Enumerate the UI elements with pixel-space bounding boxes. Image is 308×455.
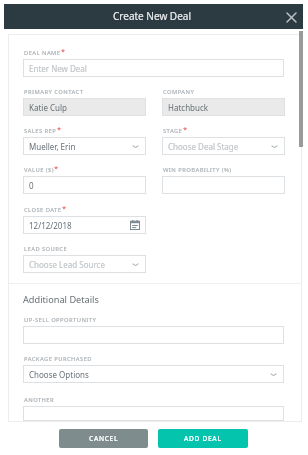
staticText: Choose Lead Source <box>29 259 105 270</box>
staticText: ANOTHER <box>24 396 55 404</box>
staticText: * <box>57 124 62 134</box>
button[interactable]: Close dialog <box>283 9 299 25</box>
button[interactable]: Katie Culp <box>23 98 146 116</box>
staticText: Katie Culp <box>29 102 67 113</box>
button[interactable]: Choose Lead Source <box>23 255 146 273</box>
staticText: STAGE <box>163 127 183 135</box>
button[interactable] <box>23 406 284 421</box>
staticText: COMPANY <box>163 88 195 96</box>
button[interactable]: Choose Deal Stage <box>162 137 285 155</box>
staticText: SALES REP <box>24 127 57 135</box>
staticText: PRIMARY CONTACT <box>24 88 84 96</box>
staticText: * <box>61 46 66 56</box>
staticText: CANCEL <box>89 434 119 443</box>
button[interactable]: CANCEL <box>59 429 148 448</box>
button[interactable]: Enter New Deal <box>23 59 284 77</box>
staticText: LEAD SOURCE <box>24 245 68 253</box>
staticText: * <box>183 124 188 134</box>
button[interactable]: 0 <box>23 176 146 194</box>
staticText: Choose Options <box>29 369 89 380</box>
staticText: Additional Details <box>23 293 99 306</box>
staticText: PACKAGE PURCHASED <box>24 355 92 363</box>
button[interactable] <box>23 326 284 344</box>
staticText: Mueller, Erin <box>29 141 76 152</box>
button[interactable]: Create New Deal <box>4 4 303 29</box>
staticText: * <box>62 203 67 213</box>
button[interactable]: 12/12/2018 <box>23 216 146 234</box>
staticText: VALUE ($) <box>24 166 54 174</box>
staticText: UP-SELL OPPORTUNITY <box>24 316 97 324</box>
staticText: Create New Deal <box>113 9 191 23</box>
button[interactable]: ADD DEAL <box>158 429 248 448</box>
button[interactable]: Mueller, Erin <box>23 137 146 155</box>
staticText: Hatchbuck <box>168 102 209 113</box>
staticText: WIN PROBABILITY (%) <box>163 166 232 174</box>
button[interactable] <box>162 176 285 194</box>
staticText: DEAL NAME <box>24 49 61 57</box>
button[interactable]: Choose Options <box>23 365 284 383</box>
staticText: Choose Deal Stage <box>168 141 239 152</box>
staticText: * <box>54 163 59 173</box>
staticText: 12/12/2018 <box>29 220 72 231</box>
staticText: 0 <box>29 180 34 191</box>
staticText: ADD DEAL <box>184 434 222 443</box>
staticText: CLOSE DATE <box>24 206 62 214</box>
button[interactable]: Hatchbuck <box>162 98 285 116</box>
staticText: Enter New Deal <box>29 63 87 74</box>
